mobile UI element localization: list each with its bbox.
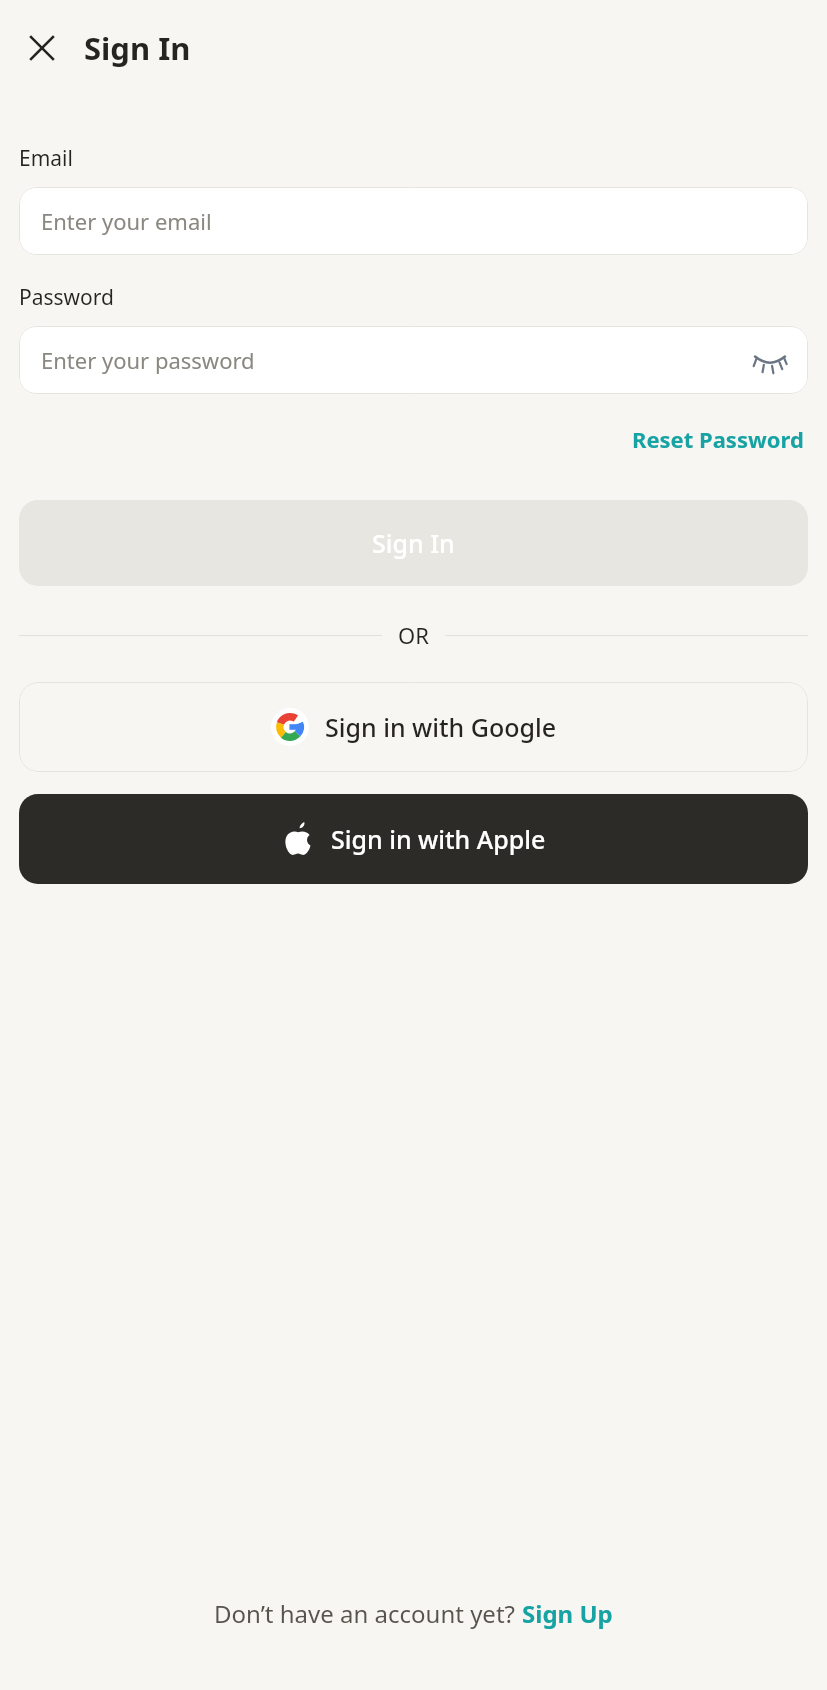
staticText: Reset Password (632, 424, 804, 454)
staticText: Email (19, 144, 73, 173)
staticText: Sign in with Google (325, 710, 557, 744)
button[interactable]: Enter your password (19, 326, 808, 394)
button[interactable]: Show password (748, 338, 792, 382)
button[interactable]: Sign in with Google (19, 682, 808, 772)
button[interactable]: Reset Password (628, 420, 808, 458)
staticText: Enter your password (41, 345, 748, 375)
button[interactable]: Close (14, 20, 70, 76)
staticText: Sign In (84, 27, 191, 69)
button[interactable]: Sign in with Apple (19, 794, 808, 884)
staticText: OR (398, 620, 429, 650)
button[interactable]: Sign Up (522, 1597, 613, 1630)
button[interactable]: Enter your email (19, 187, 808, 255)
staticText: Sign in with Apple (331, 822, 546, 856)
staticText: Sign In (372, 526, 455, 560)
staticText: Don’t have an account yet? (214, 1597, 522, 1630)
staticText: Password (19, 283, 114, 312)
staticText: Enter your email (41, 206, 212, 236)
staticText: Sign Up (522, 1597, 613, 1630)
